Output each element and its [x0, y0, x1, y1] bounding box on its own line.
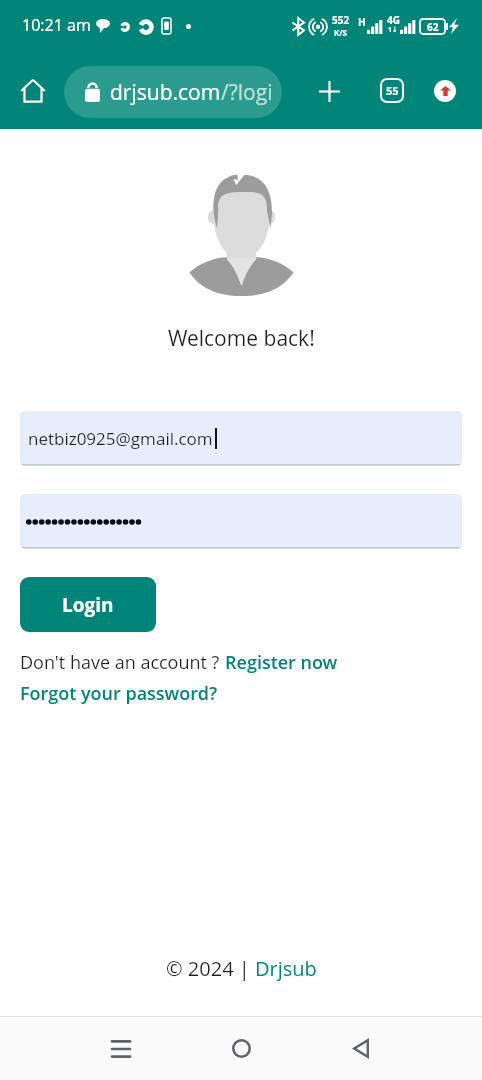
staticText: Login — [62, 592, 114, 618]
button[interactable]: Drjsub — [255, 955, 317, 982]
staticText: 62 — [427, 20, 439, 34]
button[interactable] — [20, 494, 462, 549]
staticText: 1↓ — [388, 25, 398, 35]
button[interactable]: drjsub.com — [64, 66, 282, 118]
button[interactable]: New tab — [309, 71, 349, 111]
button[interactable]: Login — [20, 577, 156, 632]
button[interactable]: Back — [340, 1017, 381, 1080]
staticText: K/S — [334, 27, 348, 38]
button[interactable]: Recent apps — [100, 1017, 141, 1080]
button[interactable]: netbiz0925@gmail.com — [20, 411, 462, 466]
staticText: 552 — [332, 13, 350, 27]
button[interactable]: Home — [220, 1017, 262, 1080]
button[interactable]: Register now — [225, 650, 338, 675]
button[interactable]: Tabs — [372, 70, 412, 110]
button[interactable]: Home — [13, 71, 53, 111]
staticText: H — [358, 15, 366, 29]
staticText: /?logi — [221, 78, 273, 107]
staticText: 4G — [387, 13, 400, 27]
staticText: Drjsub — [255, 955, 317, 982]
staticText: Register now — [225, 650, 338, 675]
staticText: drjsub.com — [110, 78, 221, 107]
staticText: © 2024 | — [166, 955, 255, 982]
staticText: Welcome back! — [168, 324, 315, 353]
staticText: Forgot your password? — [20, 681, 218, 706]
button[interactable]: Forgot your password? — [20, 680, 218, 706]
staticText: Don't have an account ? — [20, 650, 225, 675]
staticText: 10:21 am — [22, 14, 91, 36]
staticText: netbiz0925@gmail.com — [28, 427, 213, 450]
button[interactable]: Update available — [425, 71, 465, 111]
staticText: 55 — [386, 83, 399, 98]
